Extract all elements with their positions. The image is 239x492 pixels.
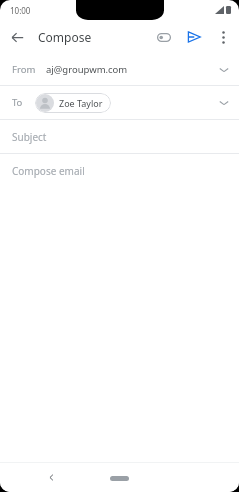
staticText: Subject xyxy=(12,130,47,144)
staticText: 10:00 xyxy=(10,5,31,16)
button[interactable]: Back xyxy=(38,464,64,490)
button[interactable]: Attach file xyxy=(149,22,179,52)
button[interactable]: Compose email xyxy=(0,154,239,187)
staticText: Zoe Taylor xyxy=(59,97,103,109)
staticText: From xyxy=(12,63,36,76)
button[interactable]: From xyxy=(0,54,239,85)
button[interactable]: Home xyxy=(110,476,129,481)
button[interactable]: Back xyxy=(0,20,34,54)
button[interactable]: To xyxy=(0,86,239,119)
button[interactable]: Send xyxy=(179,22,209,52)
staticText: aj@groupwm.com xyxy=(46,63,128,76)
staticText: Compose xyxy=(38,29,92,45)
button[interactable]: Zoe Taylor xyxy=(35,93,111,113)
button[interactable]: More options xyxy=(209,23,237,51)
staticText: To xyxy=(12,96,23,109)
staticText: Compose email xyxy=(12,164,85,178)
button[interactable]: Subject xyxy=(0,120,239,153)
